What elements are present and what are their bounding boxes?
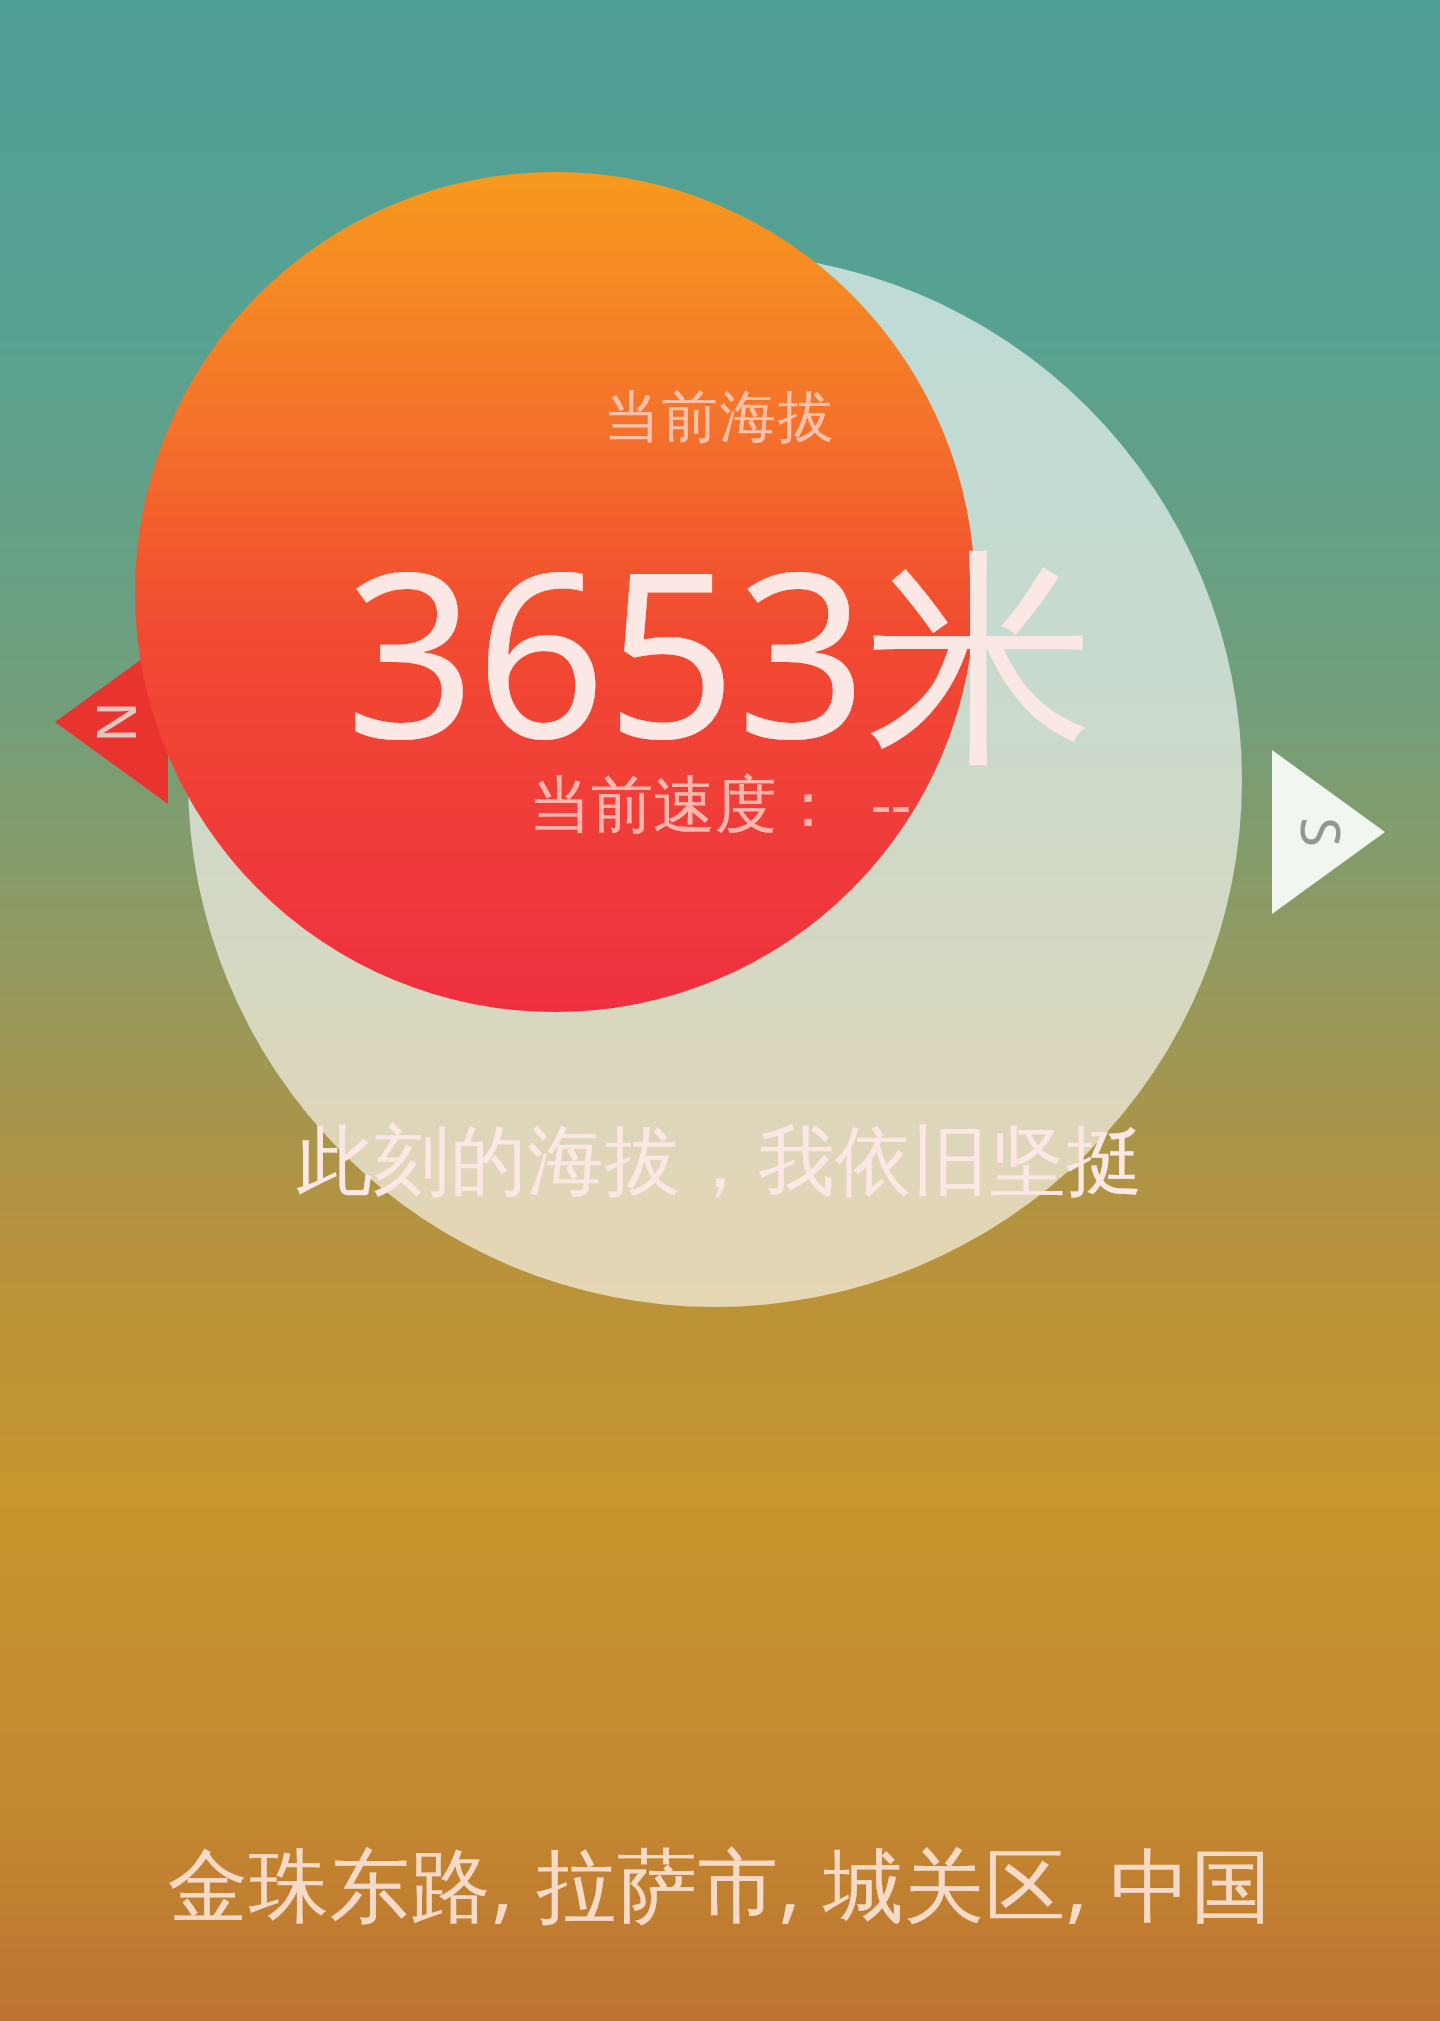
staticText: 金珠东路, 拉萨市, 城关区, 中国: [0, 1828, 1440, 1937]
button[interactable]: 当前海拔: [0, 382, 1440, 453]
staticText: 3653米: [0, 494, 1440, 805]
button[interactable]: South: [1282, 792, 1362, 872]
staticText: 此刻的海拔，我依旧坚挺: [0, 1114, 1440, 1210]
staticText: 当前速度： --: [0, 760, 1440, 845]
button[interactable]: 3653米: [0, 494, 1440, 805]
button[interactable]: 当前速度： --: [0, 760, 1440, 845]
staticText: S: [1285, 817, 1359, 847]
button[interactable]: 金珠东路, 拉萨市, 城关区, 中国: [0, 1828, 1440, 1937]
staticText: N: [81, 701, 155, 743]
button[interactable]: North: [78, 682, 158, 762]
button[interactable]: 此刻的海拔，我依旧坚挺: [0, 1114, 1440, 1210]
staticText: 当前海拔: [0, 382, 1440, 453]
